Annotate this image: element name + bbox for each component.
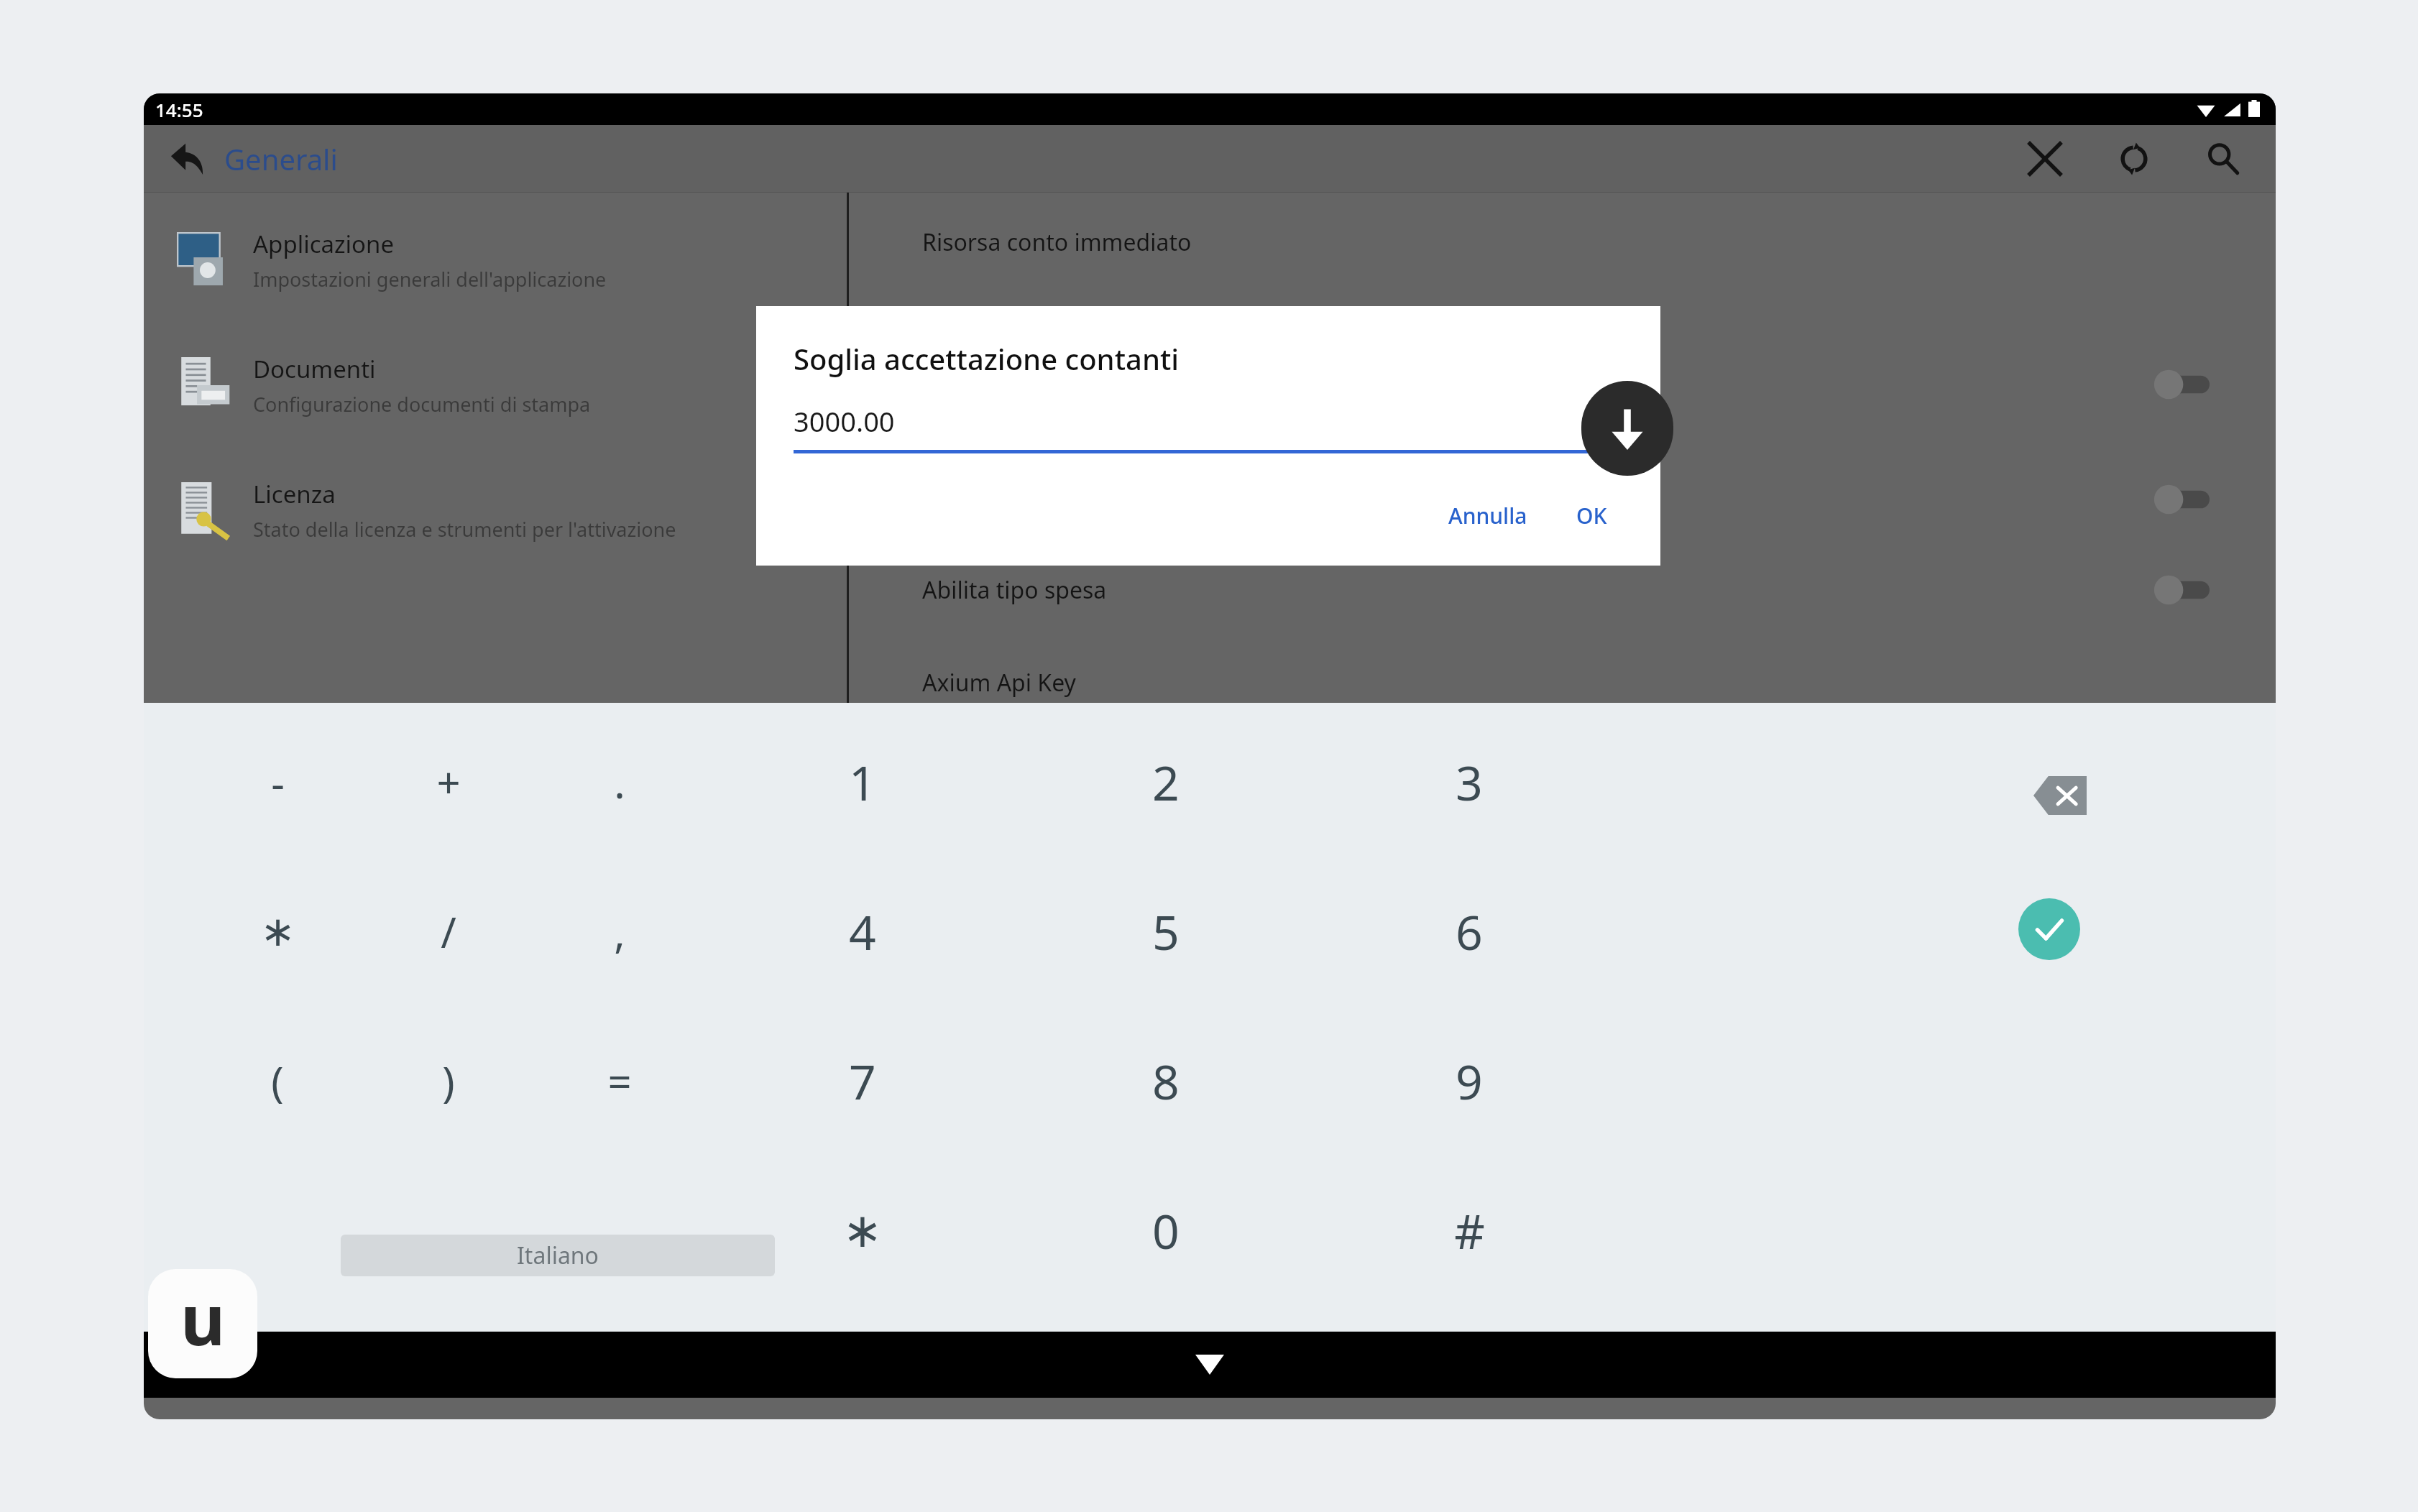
button[interactable]: ∗ (213, 894, 342, 969)
staticText: ∗ (260, 907, 295, 956)
button[interactable]: OK (1562, 492, 1622, 539)
button[interactable]: 4 (798, 894, 927, 969)
staticText: Licenza (253, 478, 336, 510)
button[interactable]: 7 (798, 1043, 927, 1118)
button[interactable]: Hide keyboard (1182, 1337, 1237, 1392)
staticText: Generali (224, 139, 338, 178)
staticText: Configurazione documenti di stampa (253, 391, 591, 418)
button[interactable]: 2 (1101, 745, 1231, 819)
button[interactable]: 1 (798, 745, 927, 819)
button[interactable]: Annulla (1434, 492, 1542, 539)
button[interactable]: App logo (148, 1269, 257, 1378)
button[interactable]: . (555, 745, 684, 819)
button[interactable]: 3 (1405, 745, 1534, 819)
staticText: 5 (1152, 899, 1180, 964)
button[interactable]: Search (2192, 128, 2254, 190)
staticText: u (180, 1271, 226, 1365)
button[interactable]: Risorsa conto immediato (922, 213, 2276, 272)
button[interactable]: , (555, 894, 684, 969)
button[interactable]: Close (2014, 128, 2076, 190)
button[interactable]: ) (384, 1043, 513, 1118)
button[interactable]: Toggle (922, 355, 2276, 414)
button[interactable]: = (555, 1043, 684, 1118)
button[interactable]: + (384, 745, 513, 819)
button[interactable]: Abilita tipo spesa (922, 561, 2276, 619)
button[interactable]: Documenti (144, 331, 847, 440)
button[interactable]: 0 (1101, 1193, 1231, 1268)
staticText: Documenti (253, 353, 376, 385)
staticText: / (441, 903, 456, 960)
staticText: , (614, 903, 625, 960)
staticText: Risorsa conto immediato (922, 226, 1192, 258)
staticText: 7 (849, 1048, 876, 1113)
button[interactable]: / (384, 894, 513, 969)
button[interactable]: Toggle (922, 470, 2276, 529)
button[interactable]: ∗ (798, 1193, 927, 1268)
button[interactable]: Back (160, 132, 214, 186)
staticText: - (271, 754, 285, 811)
staticText: Abilita tipo spesa (922, 574, 1107, 606)
button[interactable]: Italiano (341, 1235, 775, 1276)
button[interactable]: 9 (1405, 1043, 1534, 1118)
button[interactable]: # (1405, 1193, 1534, 1268)
staticText: + (436, 754, 461, 811)
staticText: 14:55 (155, 97, 203, 122)
button[interactable]: Toggle (2153, 574, 2210, 606)
button[interactable]: ( (213, 1043, 342, 1118)
staticText: Axium Api Key (922, 667, 1076, 699)
button[interactable]: Hide keyboard (1581, 381, 1673, 476)
staticText: Italiano (517, 1240, 599, 1271)
staticText: Annulla (1448, 501, 1527, 530)
staticText: . (614, 754, 625, 811)
button[interactable]: Applicazione (144, 206, 847, 315)
staticText: 1 (849, 750, 876, 814)
button[interactable]: Enter (2018, 898, 2080, 960)
staticText: 3 (1456, 750, 1483, 814)
staticText: Impostazioni generali dell'applicazione (253, 266, 607, 292)
button[interactable]: 5 (1101, 894, 1231, 969)
staticText: 2 (1152, 750, 1180, 814)
staticText: 9 (1456, 1048, 1483, 1113)
staticText: Soglia accettazione contanti (794, 339, 1180, 378)
button[interactable]: 8 (1101, 1043, 1231, 1118)
staticText: Applicazione (253, 228, 395, 260)
staticText: ) (442, 1053, 455, 1110)
staticText: = (607, 1053, 632, 1110)
staticText: 8 (1152, 1048, 1180, 1113)
staticText: 4 (849, 899, 876, 964)
staticText: ∗ (842, 1203, 883, 1258)
button[interactable]: - (213, 745, 342, 819)
button[interactable]: Toggle (2153, 369, 2210, 400)
staticText: ( (271, 1053, 284, 1110)
button[interactable]: Axium Api Key (922, 667, 2276, 703)
button[interactable]: Refresh (2103, 128, 2165, 190)
staticText: 6 (1456, 899, 1483, 964)
staticText: 3000.00 (794, 402, 895, 440)
button[interactable]: Licenza (144, 456, 847, 565)
button[interactable]: 6 (1405, 894, 1534, 969)
staticText: 0 (1152, 1198, 1180, 1263)
staticText: # (1454, 1198, 1485, 1263)
staticText: OK (1576, 501, 1607, 530)
button[interactable]: Toggle (2153, 484, 2210, 515)
button[interactable]: Backspace (2003, 756, 2118, 835)
staticText: Stato della licenza e strumenti per l'at… (253, 516, 676, 543)
